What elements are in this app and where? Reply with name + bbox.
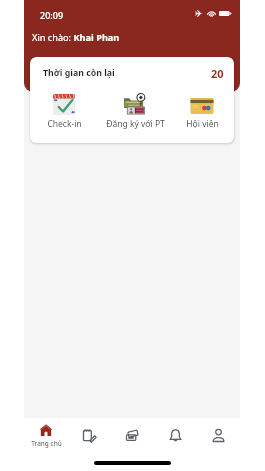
button[interactable]: Notifications [154, 418, 197, 471]
staticText: Xin chào: Khai Phan [32, 31, 120, 44]
button[interactable]: Hội viên [166, 93, 234, 130]
button[interactable]: Tickets [111, 418, 154, 471]
button[interactable]: Trang chủ [24, 418, 68, 471]
staticText: Đăng ký với PT [106, 118, 165, 130]
button[interactable]: Notes [68, 418, 111, 471]
staticText: Thời gian còn lại [43, 67, 115, 79]
staticText: Check-in [47, 118, 82, 130]
button[interactable]: Check-in [30, 93, 100, 130]
staticText: Hội viên [186, 118, 219, 130]
staticText: Trang chủ [31, 439, 62, 448]
button[interactable]: Đăng ký với PT [99, 93, 171, 130]
staticText: 20 [211, 66, 224, 81]
button[interactable]: Profile [197, 418, 240, 471]
staticText: 20:09 [40, 9, 64, 21]
